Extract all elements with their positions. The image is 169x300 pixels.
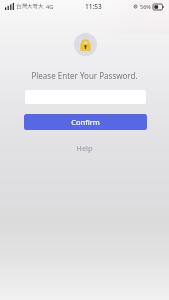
button[interactable]: Confirm — [24, 114, 147, 130]
staticText: 11:53 — [85, 2, 102, 11]
staticText: Please Enter Your Password. — [0, 70, 169, 81]
button[interactable]: Help — [68, 141, 101, 155]
staticText: 4G — [46, 3, 54, 10]
staticText: 台灣大哥大 — [16, 3, 44, 10]
staticText: 56% — [140, 3, 151, 10]
staticText: Confirm — [71, 117, 100, 127]
